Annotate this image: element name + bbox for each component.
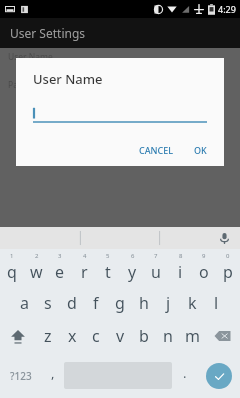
staticText: l — [214, 292, 219, 314]
staticText: w — [30, 261, 43, 283]
staticText: User Name — [8, 51, 53, 63]
button[interactable]: 6 — [120, 249, 144, 286]
button[interactable]: 4 — [72, 249, 96, 286]
staticText: CANCEL — [139, 144, 174, 156]
button[interactable]: 8 — [168, 249, 192, 286]
button[interactable]: s — [36, 286, 60, 319]
button[interactable]: a — [12, 286, 36, 319]
staticText: 3 — [58, 252, 62, 260]
button[interactable]: CANCEL — [132, 140, 181, 160]
staticText: d — [67, 292, 77, 314]
staticText: OK — [194, 144, 207, 156]
button[interactable]: 9 — [192, 249, 216, 286]
button[interactable] — [33, 107, 207, 123]
button[interactable]: Backspace — [204, 319, 240, 353]
button[interactable]: 7 — [144, 249, 168, 286]
staticText: . — [183, 364, 187, 382]
staticText: 8 — [179, 252, 183, 260]
button[interactable]: 0 — [216, 249, 240, 286]
staticText: Password — [8, 79, 47, 91]
staticText: s — [44, 292, 52, 314]
staticText: 4 — [83, 252, 87, 260]
staticText: , — [51, 364, 55, 382]
staticText: z — [44, 325, 52, 347]
staticText: 2 — [35, 252, 39, 260]
button[interactable]: d — [60, 286, 84, 319]
button[interactable]: Enter — [206, 363, 232, 389]
button[interactable]: c — [84, 319, 108, 353]
button[interactable]: l — [204, 286, 228, 319]
staticText: h — [139, 292, 149, 314]
staticText: o — [199, 261, 209, 283]
button[interactable]: 5 — [96, 249, 120, 286]
staticText: g — [115, 292, 125, 314]
staticText: i — [178, 261, 183, 283]
staticText: 1 — [10, 252, 14, 260]
button[interactable]: z — [36, 319, 60, 353]
button[interactable]: Voice input — [216, 230, 232, 246]
staticText: p — [223, 261, 233, 283]
staticText: x — [68, 325, 77, 347]
button[interactable]: 3 — [48, 249, 72, 286]
button[interactable]: k — [180, 286, 204, 319]
staticText: v — [116, 325, 125, 347]
button[interactable]: b — [132, 319, 156, 353]
button[interactable]: x — [60, 319, 84, 353]
staticText: f — [93, 292, 99, 314]
staticText: y — [128, 261, 137, 283]
staticText: a — [20, 292, 29, 314]
staticText: User Settings — [10, 25, 86, 41]
button[interactable]: j — [156, 286, 180, 319]
button[interactable]: g — [108, 286, 132, 319]
staticText: c — [92, 325, 100, 347]
button[interactable]: ?123 — [0, 353, 41, 398]
staticText: 4:29 — [218, 3, 236, 15]
staticText: n — [163, 325, 173, 347]
staticText: q — [7, 261, 17, 283]
staticText: k — [188, 292, 197, 314]
staticText: 0 — [226, 252, 230, 260]
staticText: b — [139, 325, 149, 347]
staticText: e — [55, 261, 65, 283]
button[interactable]: Shift — [0, 319, 36, 353]
staticText: r — [81, 261, 88, 283]
button[interactable]: 2 — [24, 249, 48, 286]
button[interactable]: f — [84, 286, 108, 319]
button[interactable]: 1 — [0, 249, 24, 286]
button[interactable]: , — [41, 353, 64, 398]
staticText: 6 — [131, 252, 135, 260]
button[interactable]: n — [156, 319, 180, 353]
staticText: t — [105, 261, 111, 283]
button[interactable]: v — [108, 319, 132, 353]
staticText: 5 — [106, 252, 110, 260]
staticText: ?123 — [10, 369, 32, 383]
button[interactable]: . — [172, 353, 198, 398]
button[interactable]: m — [180, 319, 204, 353]
staticText: User Name — [33, 70, 103, 88]
button[interactable]: h — [132, 286, 156, 319]
staticText: u — [151, 261, 161, 283]
staticText: 9 — [202, 252, 206, 260]
staticText: m — [185, 325, 200, 347]
button[interactable]: OK — [187, 140, 214, 160]
staticText: j — [166, 292, 171, 314]
staticText: 7 — [154, 252, 158, 260]
